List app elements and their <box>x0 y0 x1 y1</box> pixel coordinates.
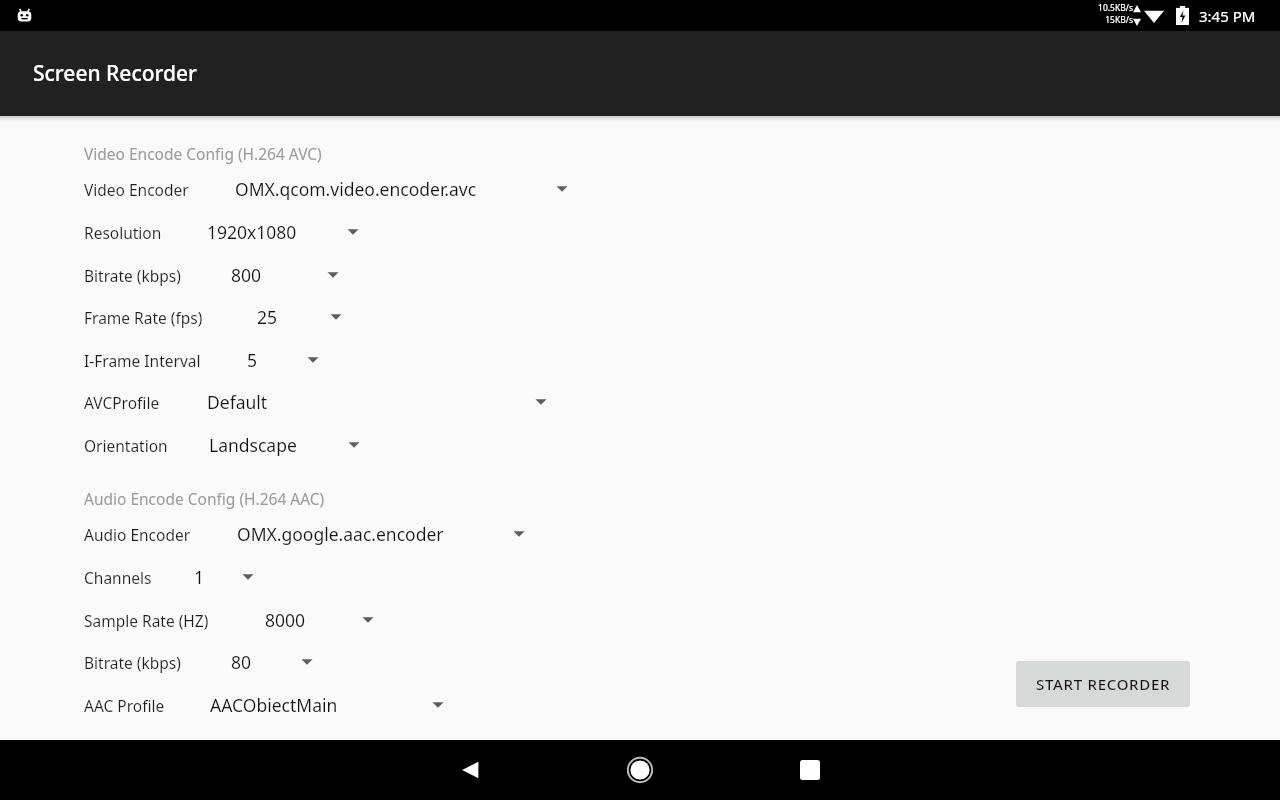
button[interactable]: START RECORDER <box>1016 661 1190 707</box>
staticText: Channels <box>84 567 152 588</box>
button[interactable]: Orientation <box>84 424 784 466</box>
staticText: Landscape <box>209 433 297 457</box>
button[interactable]: Back <box>430 740 510 800</box>
staticText: Orientation <box>84 435 168 456</box>
staticText: Default <box>207 390 268 414</box>
staticText: Video Encode Config (H.264 AVC) <box>84 143 322 164</box>
staticText: AACObiectMain <box>210 693 338 717</box>
staticText: I-Frame Interval <box>84 350 201 371</box>
button[interactable]: AVCProfile <box>84 381 784 423</box>
staticText: Resolution <box>84 222 162 243</box>
staticText: Sample Rate (HZ) <box>84 610 209 631</box>
button[interactable]: Frame Rate (fps) <box>84 296 784 338</box>
staticText: 10.5KB/s <box>1098 2 1133 14</box>
button[interactable]: AAC Profile <box>84 684 784 726</box>
staticText: Bitrate (kbps) <box>84 265 181 286</box>
staticText: 800 <box>231 263 262 287</box>
staticText: Audio Encode Config (H.264 AAC) <box>84 488 325 509</box>
button[interactable]: Bitrate (kbps) <box>84 641 784 683</box>
staticText: 80 <box>231 650 252 674</box>
staticText: OMX.google.aac.encoder <box>237 522 444 546</box>
staticText: 1 <box>194 565 205 589</box>
staticText: AAC Profile <box>84 695 165 716</box>
staticText: START RECORDER <box>1036 674 1171 694</box>
staticText: Screen Recorder <box>33 59 197 88</box>
staticText: 25 <box>257 305 278 329</box>
staticText: 5 <box>247 348 258 372</box>
staticText: 3:45 PM <box>1199 6 1256 26</box>
staticText: Bitrate (kbps) <box>84 652 181 673</box>
button[interactable]: Recent apps <box>770 740 850 800</box>
button[interactable]: Resolution <box>84 211 784 253</box>
staticText: Audio Encoder <box>84 524 191 545</box>
button[interactable]: Bitrate (kbps) <box>84 254 784 296</box>
button[interactable]: Channels <box>84 556 784 598</box>
button[interactable]: Sample Rate (HZ) <box>84 599 784 641</box>
staticText: 1920x1080 <box>207 220 297 244</box>
button[interactable]: Home <box>600 740 680 800</box>
staticText: 8000 <box>265 608 306 632</box>
staticText: AVCProfile <box>84 392 160 413</box>
staticText: 15KB/s <box>1105 14 1133 26</box>
staticText: OMX.qcom.video.encoder.avc <box>235 177 477 201</box>
staticText: Video Encoder <box>84 179 189 200</box>
staticText: Frame Rate (fps) <box>84 307 203 328</box>
button[interactable]: Audio Encoder <box>84 513 784 555</box>
button[interactable]: Video Encoder <box>84 168 784 210</box>
button[interactable]: I-Frame Interval <box>84 339 784 381</box>
